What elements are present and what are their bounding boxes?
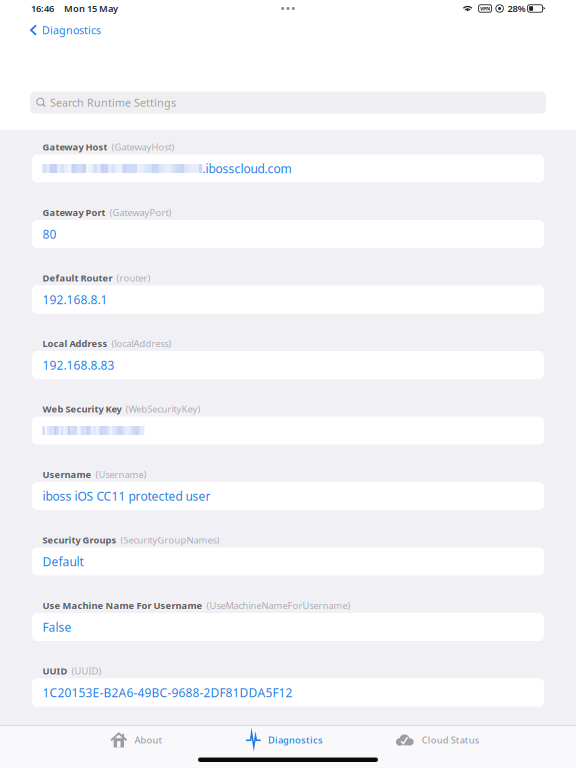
staticText: 80 (42, 226, 56, 242)
button[interactable]: Default (32, 547, 544, 575)
staticText: Default Router (42, 272, 112, 284)
staticText: Diagnostics (268, 734, 323, 746)
button[interactable]: False (32, 613, 544, 641)
staticText: 192.168.8.83 (42, 357, 114, 373)
staticText: (Username) (95, 468, 146, 481)
button[interactable]: 80 (32, 220, 544, 248)
button[interactable]: 192.168.8.1 (32, 285, 544, 313)
staticText: Default (42, 553, 83, 569)
staticText: (router) (116, 272, 150, 284)
staticText: (localAddress) (111, 337, 171, 350)
button[interactable]: .ibosscloud.com (32, 154, 544, 182)
staticText: VPN (480, 5, 490, 12)
staticText: Diagnostics (42, 23, 101, 37)
staticText: Username (42, 468, 91, 481)
staticText: 28% (508, 2, 526, 15)
button[interactable]: Cloud Status (387, 726, 488, 754)
staticText: Use Machine Name For Username (42, 599, 202, 612)
staticText: False (42, 619, 71, 635)
button[interactable]: 1C20153E-B2A6-49BC-9688-2DF81DDA5F12 (32, 678, 544, 706)
button[interactable]: Search Runtime Settings (30, 91, 546, 113)
button[interactable]: Diagnostics (27, 18, 104, 42)
button[interactable]: 192.168.8.83 (32, 351, 544, 379)
button[interactable]: About (102, 726, 171, 754)
staticText: UUID (42, 665, 67, 677)
staticText: Cloud Status (422, 734, 480, 746)
staticText: 192.168.8.1 (42, 291, 107, 307)
staticText: (UseMachineNameForUsername) (206, 599, 350, 612)
staticText: 16:46 (31, 2, 54, 15)
staticText: Mon 15 May (64, 2, 118, 15)
staticText: (SecurityGroupNames) (120, 534, 219, 546)
staticText: (GatewayHost) (111, 141, 174, 153)
staticText: (UUID) (71, 665, 101, 677)
staticText: Web Security Key (42, 403, 121, 415)
staticText: Local Address (42, 337, 107, 350)
button[interactable]: iboss iOS CC11 protected user (32, 482, 544, 510)
staticText: (GatewayPort) (109, 206, 171, 219)
staticText: Gateway Host (42, 141, 107, 153)
staticText: iboss iOS CC11 protected user (42, 488, 210, 504)
staticText: Gateway Port (42, 206, 105, 219)
staticText: (WebSecurityKey) (125, 403, 200, 415)
button[interactable] (32, 416, 544, 444)
staticText: Search Runtime Settings (50, 95, 176, 110)
staticText: 1C20153E-B2A6-49BC-9688-2DF81DDA5F12 (42, 684, 292, 700)
staticText: .ibosscloud.com (202, 160, 291, 176)
staticText: Security Groups (42, 534, 116, 546)
button[interactable]: Diagnostics (238, 726, 331, 754)
staticText: About (135, 734, 163, 746)
